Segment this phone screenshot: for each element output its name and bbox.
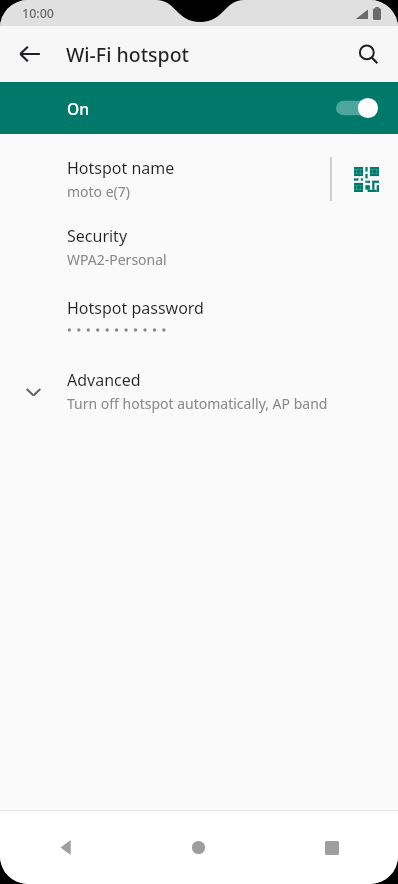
button[interactable]: Home <box>132 811 265 884</box>
staticText: moto e(7) <box>67 182 131 201</box>
staticText: 10:00 <box>22 5 55 22</box>
button[interactable]: Back <box>6 30 54 78</box>
button[interactable]: Recent apps <box>265 811 398 884</box>
staticText: On <box>67 98 89 119</box>
staticText: Advanced <box>67 369 141 391</box>
staticText: WPA2-Personal <box>67 250 167 269</box>
button[interactable]: Share hotspot QR code <box>334 148 398 210</box>
staticText: Security <box>67 225 128 247</box>
button[interactable]: Advanced <box>0 363 398 419</box>
button[interactable]: Search <box>344 30 392 78</box>
staticText: Turn off hotspot automatically, AP band <box>67 394 328 413</box>
button[interactable]: Hotspot password <box>0 291 398 341</box>
button[interactable]: Back <box>0 811 132 884</box>
staticText: Hotspot name <box>67 157 175 179</box>
button[interactable]: Security <box>0 219 398 275</box>
button[interactable]: Hotspot name <box>0 148 328 210</box>
staticText: Hotspot password <box>67 297 204 319</box>
staticText: Wi-Fi hotspot <box>66 41 190 68</box>
button[interactable]: On <box>0 82 398 134</box>
